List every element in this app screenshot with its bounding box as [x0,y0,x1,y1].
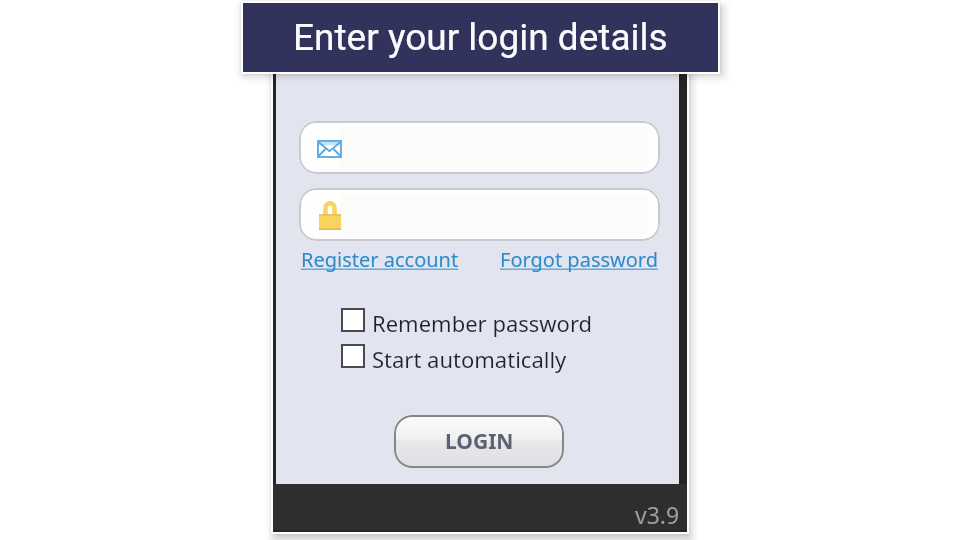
button[interactable]: Email [299,121,660,174]
button[interactable]: Start automatically [341,339,567,375]
button[interactable]: Password [299,188,660,241]
staticText: Remember password [372,308,593,338]
other: Password [319,201,341,230]
other: Email [317,140,342,158]
button[interactable]: LOGIN [394,415,564,468]
button[interactable]: Register account [301,246,459,273]
staticText: v3.9 [635,499,680,530]
staticText: LOGIN [445,427,514,456]
staticText: Register account [301,246,459,273]
button[interactable]: Remember password [341,303,593,339]
staticText: Enter your login details [293,16,668,59]
button[interactable]: Forgot password [500,246,659,273]
staticText: Start automatically [372,344,567,374]
staticText: Forgot password [500,246,659,273]
